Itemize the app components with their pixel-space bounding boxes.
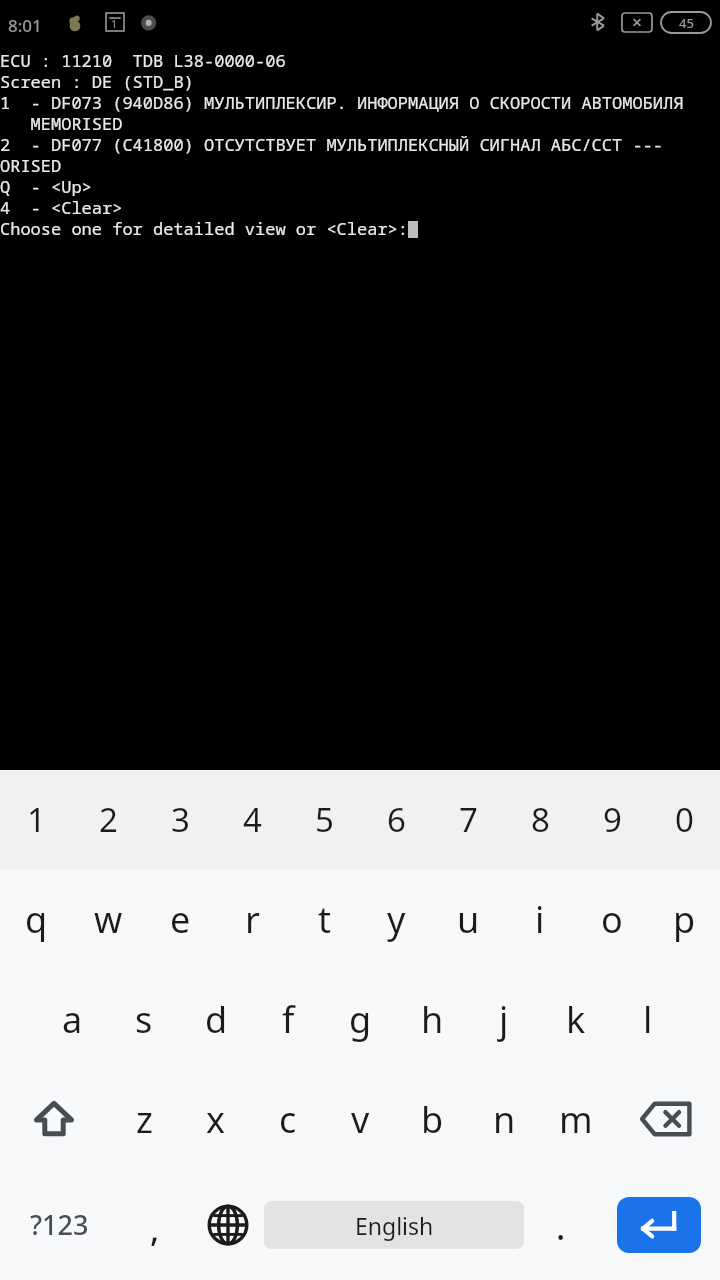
button[interactable]: 6 [360,770,432,869]
staticText: . [556,1204,566,1250]
staticText: 8 [531,797,550,842]
button[interactable]: c [252,1069,324,1169]
button[interactable]: Enter [597,1169,720,1280]
staticText: w [94,895,123,944]
staticText: o [601,895,623,944]
button[interactable]: 9 [576,770,648,869]
staticText: x [206,1095,226,1144]
staticText: Q - <Up> [0,175,92,196]
staticText: English [355,1210,434,1241]
button[interactable]: Shift [0,1069,108,1169]
staticText: y [387,895,406,944]
button[interactable]: 8 [504,770,576,869]
staticText: n [493,1095,516,1144]
staticText: q [25,895,48,944]
button[interactable]: 3 [144,770,216,869]
button[interactable]: l [612,969,684,1069]
staticText: j [499,995,509,1044]
button[interactable]: 7 [432,770,504,869]
staticText: r [245,895,260,944]
button[interactable]: 1 [0,770,72,869]
staticText: f [282,995,295,1044]
button[interactable]: 4 [216,770,288,869]
staticText: 0 [675,797,694,842]
staticText: 1 [111,16,118,31]
button[interactable]: n [468,1069,540,1169]
staticText: z [136,1095,153,1144]
staticText: 3 [171,797,190,842]
button[interactable]: m [540,1069,612,1169]
staticText: u [457,895,480,944]
staticText: ECU : 11210 TDB L38-0000-06 [0,49,286,70]
button[interactable]: d [180,969,252,1069]
button[interactable]: g [324,969,396,1069]
button[interactable]: . [524,1169,597,1280]
button[interactable]: z [108,1069,180,1169]
button[interactable]: f [252,969,324,1069]
staticText: l [643,995,653,1044]
button[interactable]: e [144,869,216,969]
button[interactable]: Backspace [612,1069,720,1169]
staticText: v [351,1095,370,1144]
button[interactable]: 5 [288,770,360,869]
button[interactable]: a [36,969,108,1069]
button[interactable]: h [396,969,468,1069]
button[interactable]: o [576,869,648,969]
staticText: Screen : DE (STD_B) [0,70,194,91]
button[interactable]: English [264,1169,524,1280]
button[interactable]: x [180,1069,252,1169]
button[interactable]: , [118,1169,191,1280]
button[interactable]: t [288,869,360,969]
staticText: ORISED [0,154,62,175]
staticText: h [421,995,444,1044]
staticText: 8:01 [8,14,42,37]
button[interactable]: y [360,869,432,969]
staticText: 4 - <Clear> [0,196,123,217]
button[interactable]: v [324,1069,396,1169]
staticText: 9 [603,797,622,842]
staticText: a [62,995,83,1044]
button[interactable]: Change language [191,1169,264,1280]
staticText: Choose one for detailed view or <Clear>: [0,217,408,238]
staticText: g [349,995,372,1044]
staticText: 1 [27,797,46,842]
staticText: 1 - DF073 (940D86) МУЛЬТИПЛЕКСИР. ИНФОРМ… [0,91,720,112]
button[interactable]: j [468,969,540,1069]
button[interactable]: w [72,869,144,969]
button[interactable]: q [0,869,72,969]
staticText: 6 [387,797,406,842]
staticText: 2 - DF077 (C41800) ОТСУТСТВУЕТ МУЛЬТИПЛЕ… [0,133,720,154]
button[interactable]: u [432,869,504,969]
staticText: d [205,995,228,1044]
staticText: MEMORISED [0,112,123,133]
staticText: i [535,895,545,944]
button[interactable]: s [108,969,180,1069]
button[interactable]: p [648,869,720,969]
staticText: b [421,1095,444,1144]
staticText: 5 [315,797,334,842]
button[interactable]: b [396,1069,468,1169]
button[interactable]: ?123 [0,1169,118,1280]
staticText: , [150,1206,160,1252]
staticText: 7 [459,797,478,842]
staticText: s [135,995,153,1044]
staticText: m [559,1095,593,1144]
staticText: c [279,1095,297,1144]
staticText: e [170,895,191,944]
staticText: 4 [243,797,262,842]
staticText: p [673,895,696,944]
button[interactable]: 0 [648,770,720,869]
staticText: 2 [99,797,118,842]
staticText: ?123 [30,1206,89,1243]
button[interactable]: i [504,869,576,969]
button[interactable]: r [216,869,288,969]
staticText: t [318,895,331,944]
staticText: k [566,995,586,1044]
button[interactable]: k [540,969,612,1069]
staticText: 45 [679,14,694,32]
button[interactable]: 2 [72,770,144,869]
